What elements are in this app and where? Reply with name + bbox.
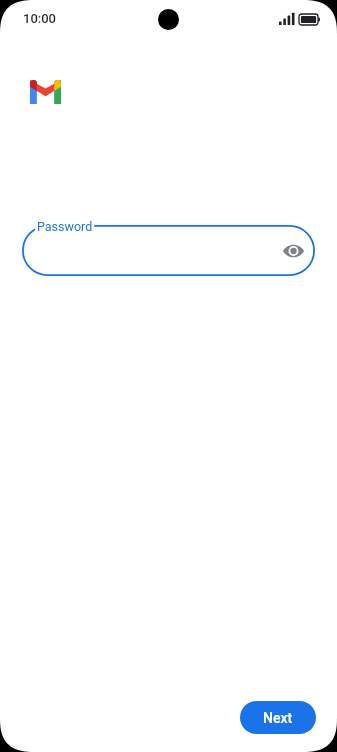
staticText: Password	[37, 219, 93, 234]
button[interactable]: Show password	[275, 233, 311, 269]
button[interactable]: Next	[240, 701, 316, 734]
staticText: 10:00	[23, 11, 57, 26]
staticText: Next	[263, 710, 293, 726]
